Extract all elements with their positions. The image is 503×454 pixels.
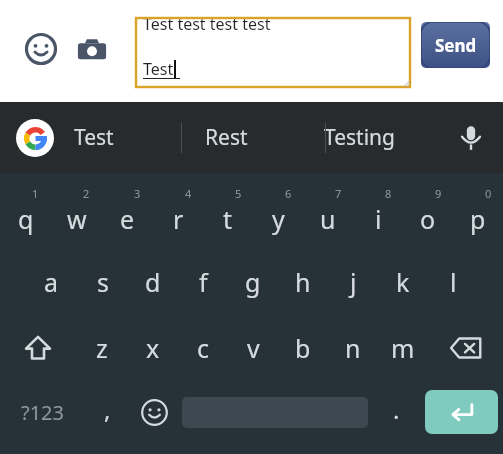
- staticText: r: [173, 202, 184, 236]
- button[interactable]: Rest: [168, 102, 285, 173]
- staticText: m: [391, 331, 415, 365]
- button[interactable]: v: [228, 316, 278, 380]
- staticText: Test: [74, 123, 114, 152]
- staticText: Testing: [324, 123, 396, 152]
- button[interactable]: m: [378, 316, 428, 380]
- staticText: g: [245, 265, 261, 299]
- staticText: 3: [134, 186, 141, 201]
- button[interactable]: 9: [403, 178, 453, 248]
- button[interactable]: g: [228, 250, 278, 314]
- button[interactable]: Insert emoji: [25, 33, 57, 65]
- button[interactable]: Enter: [425, 390, 498, 434]
- button[interactable]: 0: [453, 178, 503, 248]
- button[interactable]: Take photo: [76, 35, 108, 67]
- staticText: t: [223, 202, 233, 236]
- button[interactable]: d: [128, 250, 178, 314]
- button[interactable]: l: [428, 250, 478, 314]
- button[interactable]: s: [77, 250, 128, 314]
- button[interactable]: Send: [421, 22, 490, 68]
- staticText: w: [67, 202, 87, 236]
- staticText: f: [199, 265, 208, 299]
- staticText: 5: [235, 186, 242, 201]
- staticText: l: [450, 265, 457, 299]
- button[interactable]: 4: [153, 178, 203, 248]
- button[interactable]: Shift: [0, 316, 76, 380]
- button[interactable]: n: [328, 316, 378, 380]
- staticText: k: [396, 265, 410, 299]
- button[interactable]: ,: [84, 380, 130, 444]
- staticText: 1: [32, 186, 39, 201]
- button[interactable]: 1: [0, 178, 51, 248]
- staticText: Test test test test: [143, 18, 271, 30]
- staticText: 4: [185, 186, 192, 201]
- staticText: Send: [435, 34, 477, 57]
- staticText: i: [375, 202, 382, 236]
- staticText: x: [146, 331, 160, 365]
- staticText: v: [247, 331, 260, 365]
- staticText: 9: [435, 186, 442, 201]
- staticText: d: [145, 265, 161, 299]
- button[interactable]: Voice input: [455, 122, 487, 154]
- button[interactable]: c: [178, 316, 228, 380]
- staticText: ,: [104, 393, 111, 426]
- button[interactable]: 7: [303, 178, 353, 248]
- staticText: y: [272, 202, 285, 236]
- button[interactable]: 6: [253, 178, 303, 248]
- staticText: 6: [285, 186, 292, 201]
- button[interactable]: j: [328, 250, 378, 314]
- staticText: o: [420, 202, 436, 236]
- staticText: p: [470, 202, 486, 236]
- button[interactable]: Test: [35, 102, 152, 173]
- button[interactable]: Backspace: [428, 316, 503, 380]
- button[interactable]: .: [372, 380, 420, 444]
- button[interactable]: x: [127, 316, 178, 380]
- button[interactable]: k: [378, 250, 428, 314]
- staticText: 0: [485, 186, 492, 201]
- staticText: j: [350, 265, 357, 299]
- button[interactable]: z: [76, 316, 127, 380]
- staticText: Rest: [205, 123, 248, 152]
- staticText: ?123: [21, 399, 64, 426]
- staticText: c: [197, 331, 210, 365]
- staticText: 2: [83, 186, 90, 201]
- button[interactable]: Testing: [300, 102, 420, 173]
- staticText: .: [393, 393, 400, 426]
- button[interactable]: Emoji keyboard: [130, 380, 178, 444]
- button[interactable]: 5: [203, 178, 253, 248]
- staticText: n: [345, 331, 361, 365]
- button[interactable]: f: [178, 250, 228, 314]
- staticText: a: [44, 265, 59, 299]
- button[interactable]: Test test test test: [136, 18, 410, 87]
- staticText: h: [295, 265, 311, 299]
- staticText: z: [96, 331, 108, 365]
- staticText: Test: [143, 58, 174, 80]
- staticText: s: [97, 265, 109, 299]
- staticText: 7: [335, 186, 342, 201]
- button[interactable]: Google search: [16, 119, 54, 157]
- button[interactable]: 3: [102, 178, 153, 248]
- staticText: u: [320, 202, 336, 236]
- button[interactable]: 2: [51, 178, 102, 248]
- staticText: q: [18, 202, 34, 236]
- button[interactable]: 8: [353, 178, 403, 248]
- button[interactable]: h: [278, 250, 328, 314]
- button[interactable]: ?123: [0, 380, 84, 444]
- staticText: b: [295, 331, 311, 365]
- button[interactable]: a: [26, 250, 77, 314]
- staticText: 8: [385, 186, 392, 201]
- button[interactable]: b: [278, 316, 328, 380]
- staticText: e: [120, 202, 135, 236]
